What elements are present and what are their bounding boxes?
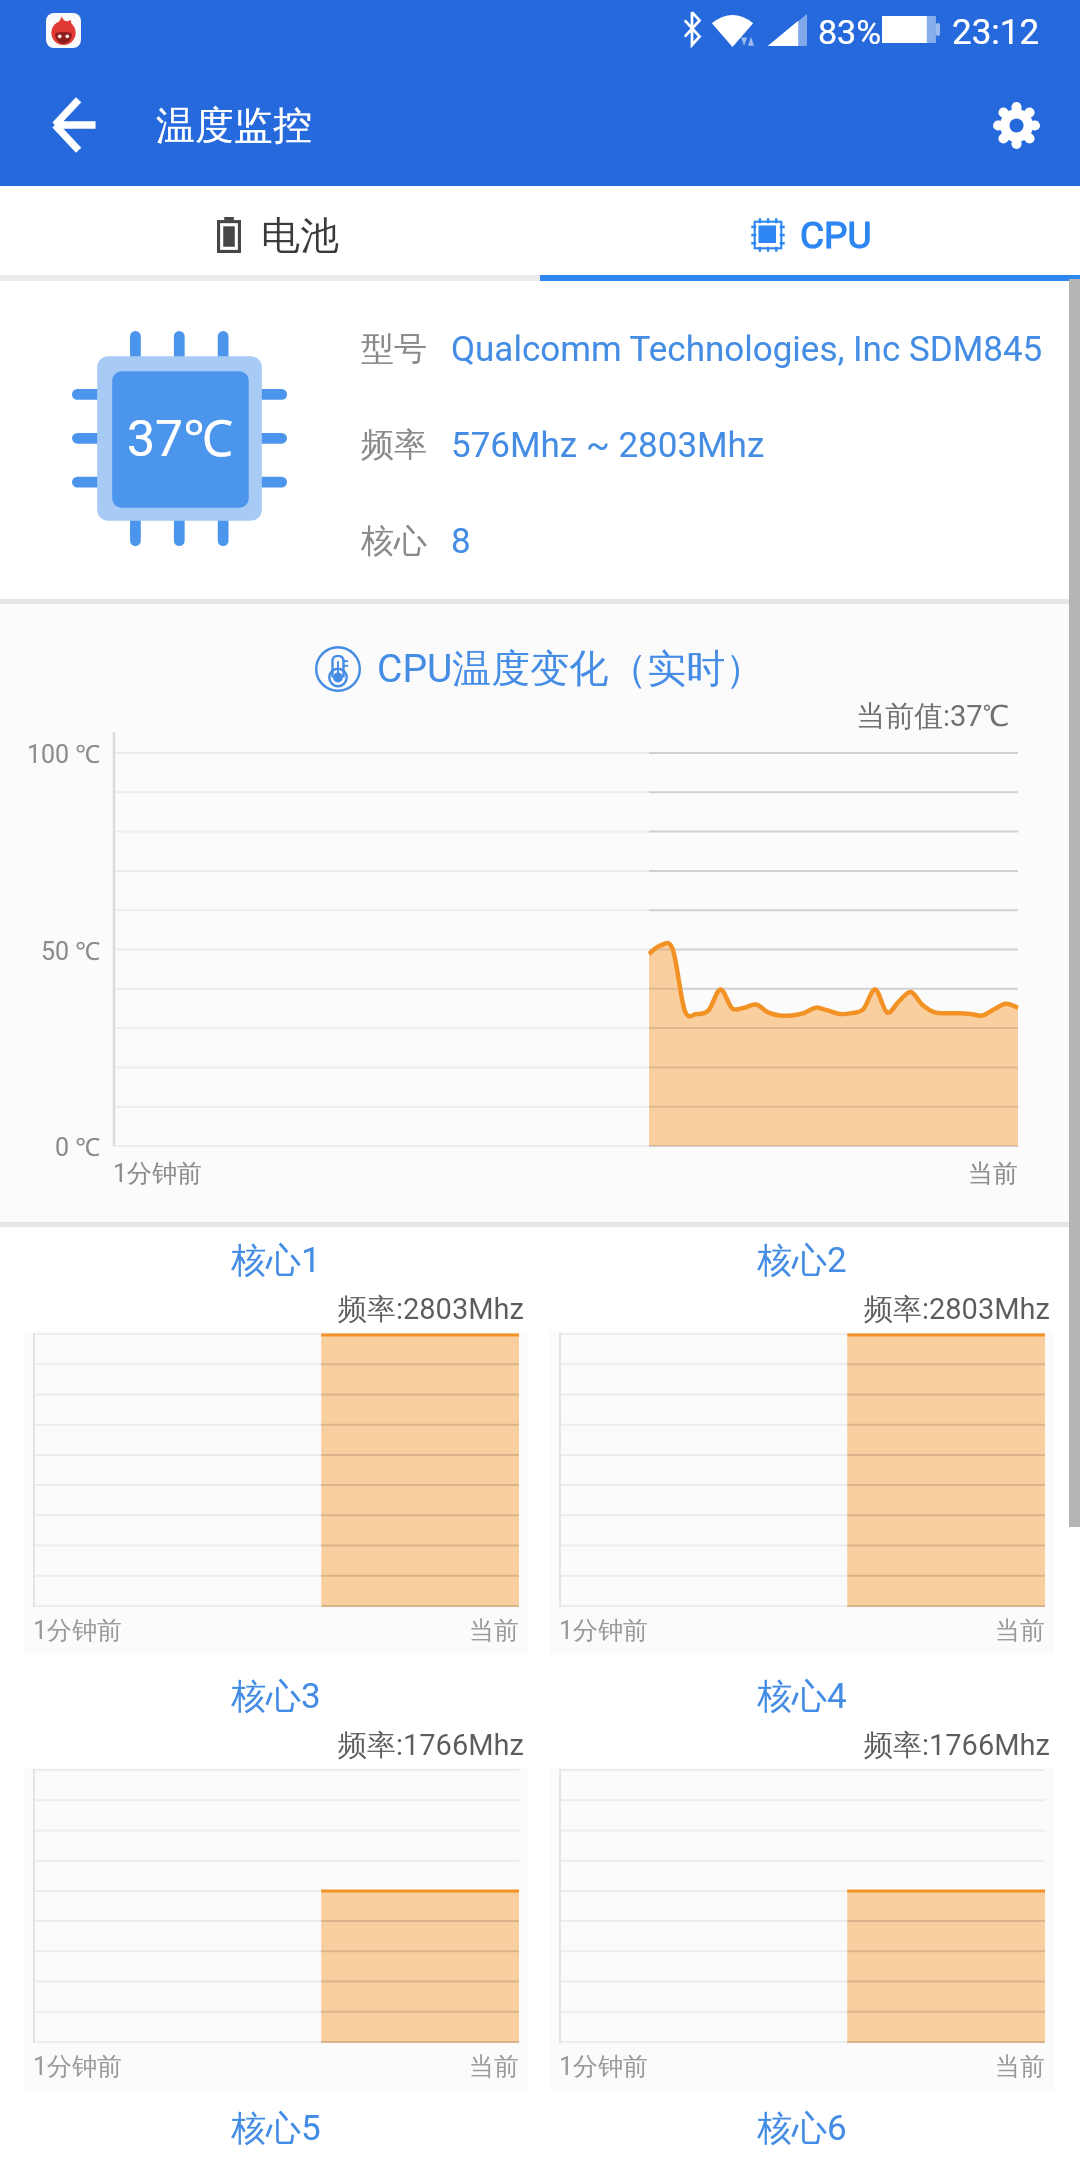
- staticText: 100 ℃: [27, 736, 101, 770]
- staticText: 23:12: [952, 12, 1040, 53]
- staticText: 1分钟前: [559, 2051, 649, 2082]
- staticText: Qualcomm Technologies, Inc SDM845: [451, 329, 1043, 370]
- staticText: 当前: [469, 2051, 519, 2082]
- button[interactable]: Back: [23, 64, 125, 186]
- staticText: 当前: [968, 1158, 1018, 1189]
- staticText: 1分钟前: [33, 1615, 123, 1646]
- staticText: 1分钟前: [559, 1615, 649, 1646]
- staticText: 50 ℃: [41, 933, 101, 967]
- staticText: 频率:2803Mhz: [338, 1291, 524, 1328]
- button[interactable]: 电池: [8, 191, 548, 279]
- staticText: 核心3: [231, 1674, 321, 1718]
- staticText: 8: [451, 521, 471, 562]
- staticText: 频率:1766Mhz: [338, 1727, 524, 1764]
- staticText: 频率:1766Mhz: [864, 1727, 1050, 1764]
- staticText: 1分钟前: [113, 1158, 203, 1189]
- staticText: 温度监控: [156, 101, 312, 150]
- staticText: 当前值:37℃: [856, 698, 1010, 735]
- staticText: 当前: [469, 1615, 519, 1646]
- staticText: 83%: [818, 12, 882, 52]
- staticText: 当前: [995, 1615, 1045, 1646]
- staticText: 576Mhz ~ 2803Mhz: [451, 425, 765, 466]
- staticText: CPU: [800, 214, 872, 257]
- staticText: 型号: [361, 328, 427, 370]
- staticText: 37℃: [127, 403, 233, 471]
- staticText: 1分钟前: [33, 2051, 123, 2082]
- button[interactable]: CPU: [540, 191, 1080, 279]
- staticText: 电池: [261, 211, 339, 260]
- staticText: 频率:2803Mhz: [864, 1291, 1050, 1328]
- staticText: 核心2: [757, 1238, 847, 1282]
- staticText: 核心4: [757, 1674, 847, 1718]
- staticText: 核心: [361, 520, 427, 562]
- staticText: 核心6: [757, 2106, 847, 2150]
- staticText: 核心5: [231, 2106, 321, 2150]
- staticText: CPU温度变化（实时）: [377, 644, 765, 693]
- button[interactable]: Settings: [970, 64, 1062, 186]
- staticText: 0 ℃: [55, 1129, 101, 1163]
- staticText: 频率: [361, 424, 427, 466]
- staticText: 当前: [995, 2051, 1045, 2082]
- staticText: 核心1: [231, 1238, 321, 1282]
